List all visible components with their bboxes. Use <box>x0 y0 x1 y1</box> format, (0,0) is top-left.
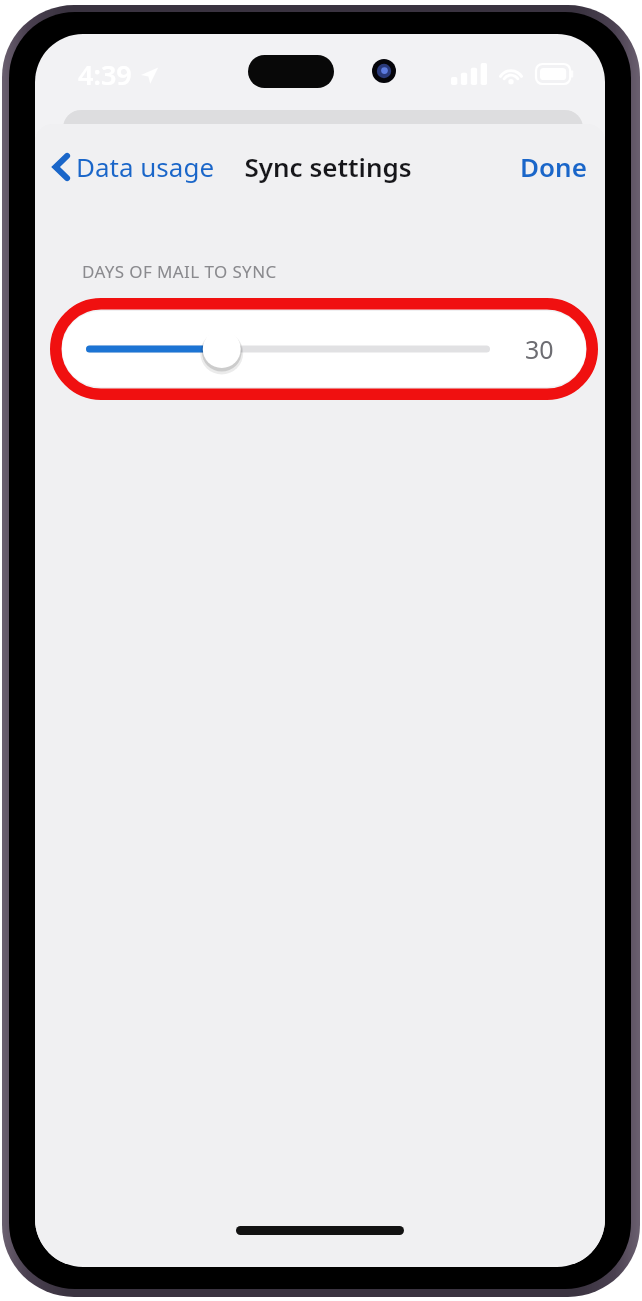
staticText: Data usage <box>76 149 215 184</box>
button[interactable]: Data usage <box>35 143 223 190</box>
button[interactable]: 30 <box>62 311 586 387</box>
button[interactable]: Done <box>502 143 605 190</box>
staticText: 4:39 <box>78 56 132 93</box>
staticText: Done <box>520 149 587 184</box>
staticText: 30 <box>525 332 554 366</box>
staticText: Sync settings <box>244 149 412 184</box>
other: Highlighted slider <box>50 298 598 400</box>
staticText: DAYS OF MAIL TO SYNC <box>82 260 277 283</box>
